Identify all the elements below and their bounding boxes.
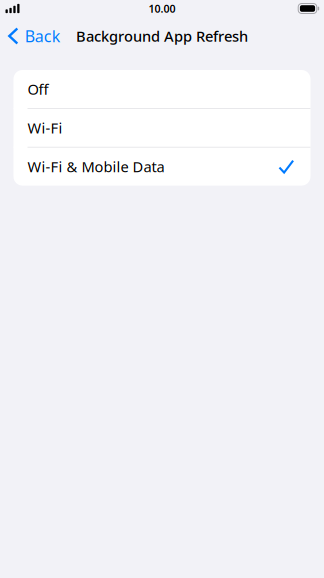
- button[interactable]: Wi-Fi: [13, 109, 310, 147]
- staticText: Off: [27, 79, 48, 99]
- button[interactable]: Back: [0, 19, 71, 53]
- staticText: 10.00: [148, 1, 175, 16]
- staticText: Back: [25, 25, 61, 47]
- button[interactable]: Off: [13, 70, 310, 108]
- staticText: Wi-Fi & Mobile Data: [27, 157, 164, 176]
- staticText: Background App Refresh: [76, 26, 248, 46]
- button[interactable]: Wi-Fi & Mobile Data: [13, 148, 310, 186]
- staticText: Wi-Fi: [27, 118, 62, 138]
